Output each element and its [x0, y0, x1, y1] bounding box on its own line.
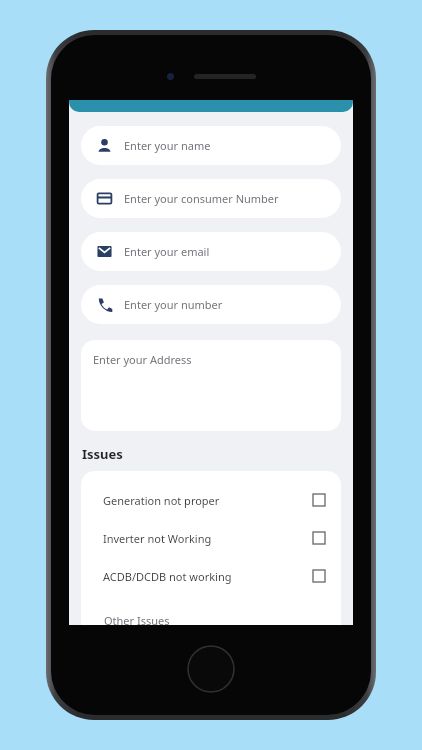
- button[interactable]: Other Issues: [92, 599, 330, 625]
- button[interactable]: Generation not proper: [81, 481, 341, 519]
- button[interactable]: Enter your number: [81, 285, 341, 324]
- staticText: Inverter not Working: [103, 531, 212, 546]
- staticText: Issues: [82, 445, 123, 463]
- staticText: Other Issues: [104, 613, 170, 625]
- staticText: Enter your consumer Number: [124, 191, 279, 206]
- button[interactable]: Inverter not Working: [81, 519, 341, 557]
- staticText: Enter your name: [124, 138, 211, 153]
- button[interactable]: ACDB/DCDB not working: [81, 557, 341, 595]
- button[interactable]: Enter your name: [81, 126, 341, 165]
- staticText: Enter your number: [124, 297, 223, 312]
- staticText: Enter your Address: [93, 352, 192, 367]
- button[interactable]: Enter your consumer Number: [81, 179, 341, 218]
- staticText: Enter your email: [124, 244, 210, 259]
- button[interactable]: Enter your Address: [81, 340, 341, 431]
- button[interactable]: Enter your email: [81, 232, 341, 271]
- staticText: ACDB/DCDB not working: [103, 569, 232, 584]
- staticText: Generation not proper: [103, 493, 220, 508]
